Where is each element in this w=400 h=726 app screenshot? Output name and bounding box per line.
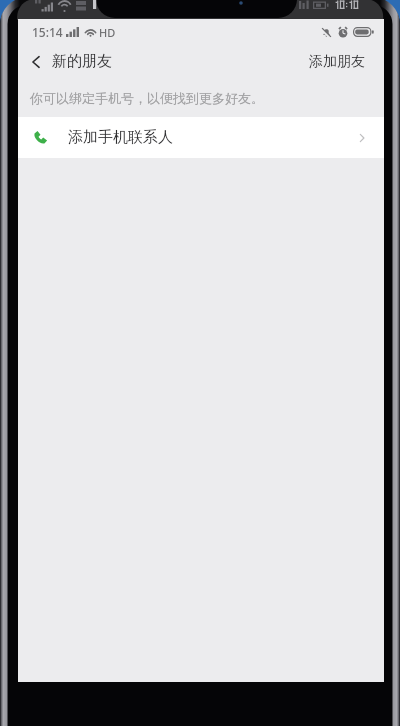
staticText: 新的朋友 [52,52,112,71]
button[interactable]: 添加手机联系人 [18,117,384,158]
button[interactable]: 添加朋友 [299,47,384,77]
staticText: 15:14 [32,24,63,40]
staticText: 添加手机联系人 [68,128,173,147]
staticText: HD [99,25,116,40]
other: Back [29,55,43,69]
staticText: 添加朋友 [309,53,365,71]
other: Alarm [337,26,349,38]
staticText: 你可以绑定手机号，以便找到更多好友。 [30,90,264,106]
button[interactable]: Back [18,48,120,75]
other: Mute [321,27,332,38]
